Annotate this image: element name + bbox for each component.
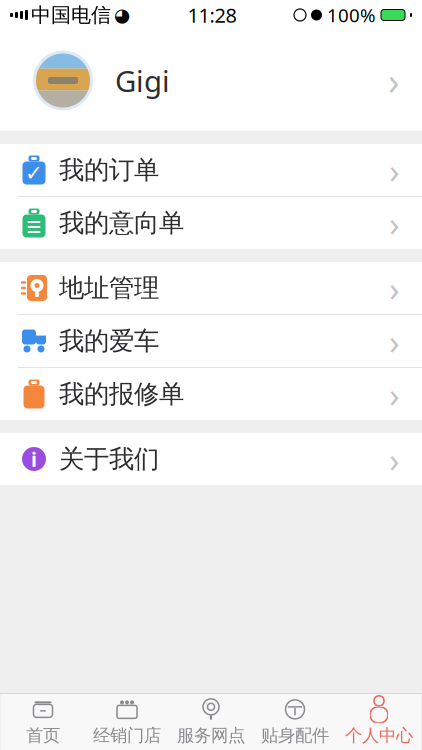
staticText: 我的意向单 [59,207,184,238]
staticText: › [389,371,400,417]
button[interactable]: 我的意向单 [0,197,422,249]
staticText: 首页 [26,725,60,746]
staticText: ✓ [25,161,43,185]
staticText: › [389,147,400,193]
staticText: ◕ [114,4,130,26]
staticText: 个人中心 [345,725,413,746]
button[interactable]: 地址管理 [0,262,422,314]
staticText: 贴身配件 [261,725,329,746]
staticText: 服务网点 [177,725,245,746]
button[interactable]: i [0,433,422,485]
staticText: › [389,265,400,311]
button[interactable]: 经销门店 [85,694,169,750]
staticText: 中国电信 [31,3,111,27]
button[interactable]: 首页 [1,694,85,750]
staticText: 我的爱车 [59,325,159,356]
button[interactable]: 贴身配件 [253,694,337,750]
button[interactable]: ✓ [0,144,422,196]
staticText: 我的订单 [59,154,159,185]
staticText: i [31,446,37,472]
button[interactable]: Gigi [0,30,422,131]
staticText: 100% [327,3,376,27]
button[interactable]: 服务网点 [169,694,253,750]
staticText: › [389,200,400,246]
staticText: 经销门店 [93,725,161,746]
staticText: 地址管理 [59,272,159,303]
staticText: › [388,56,400,105]
staticText: 我的报修单 [59,378,184,409]
staticText: › [389,318,400,364]
button[interactable]: 我的爱车 [0,315,422,367]
staticText: › [389,436,400,482]
staticText: Gigi [115,61,170,100]
staticText: 关于我们 [59,443,159,474]
staticText: 11:28 [187,2,236,28]
button[interactable]: 个人中心 [337,694,421,750]
button[interactable]: 我的报修单 [0,368,422,420]
